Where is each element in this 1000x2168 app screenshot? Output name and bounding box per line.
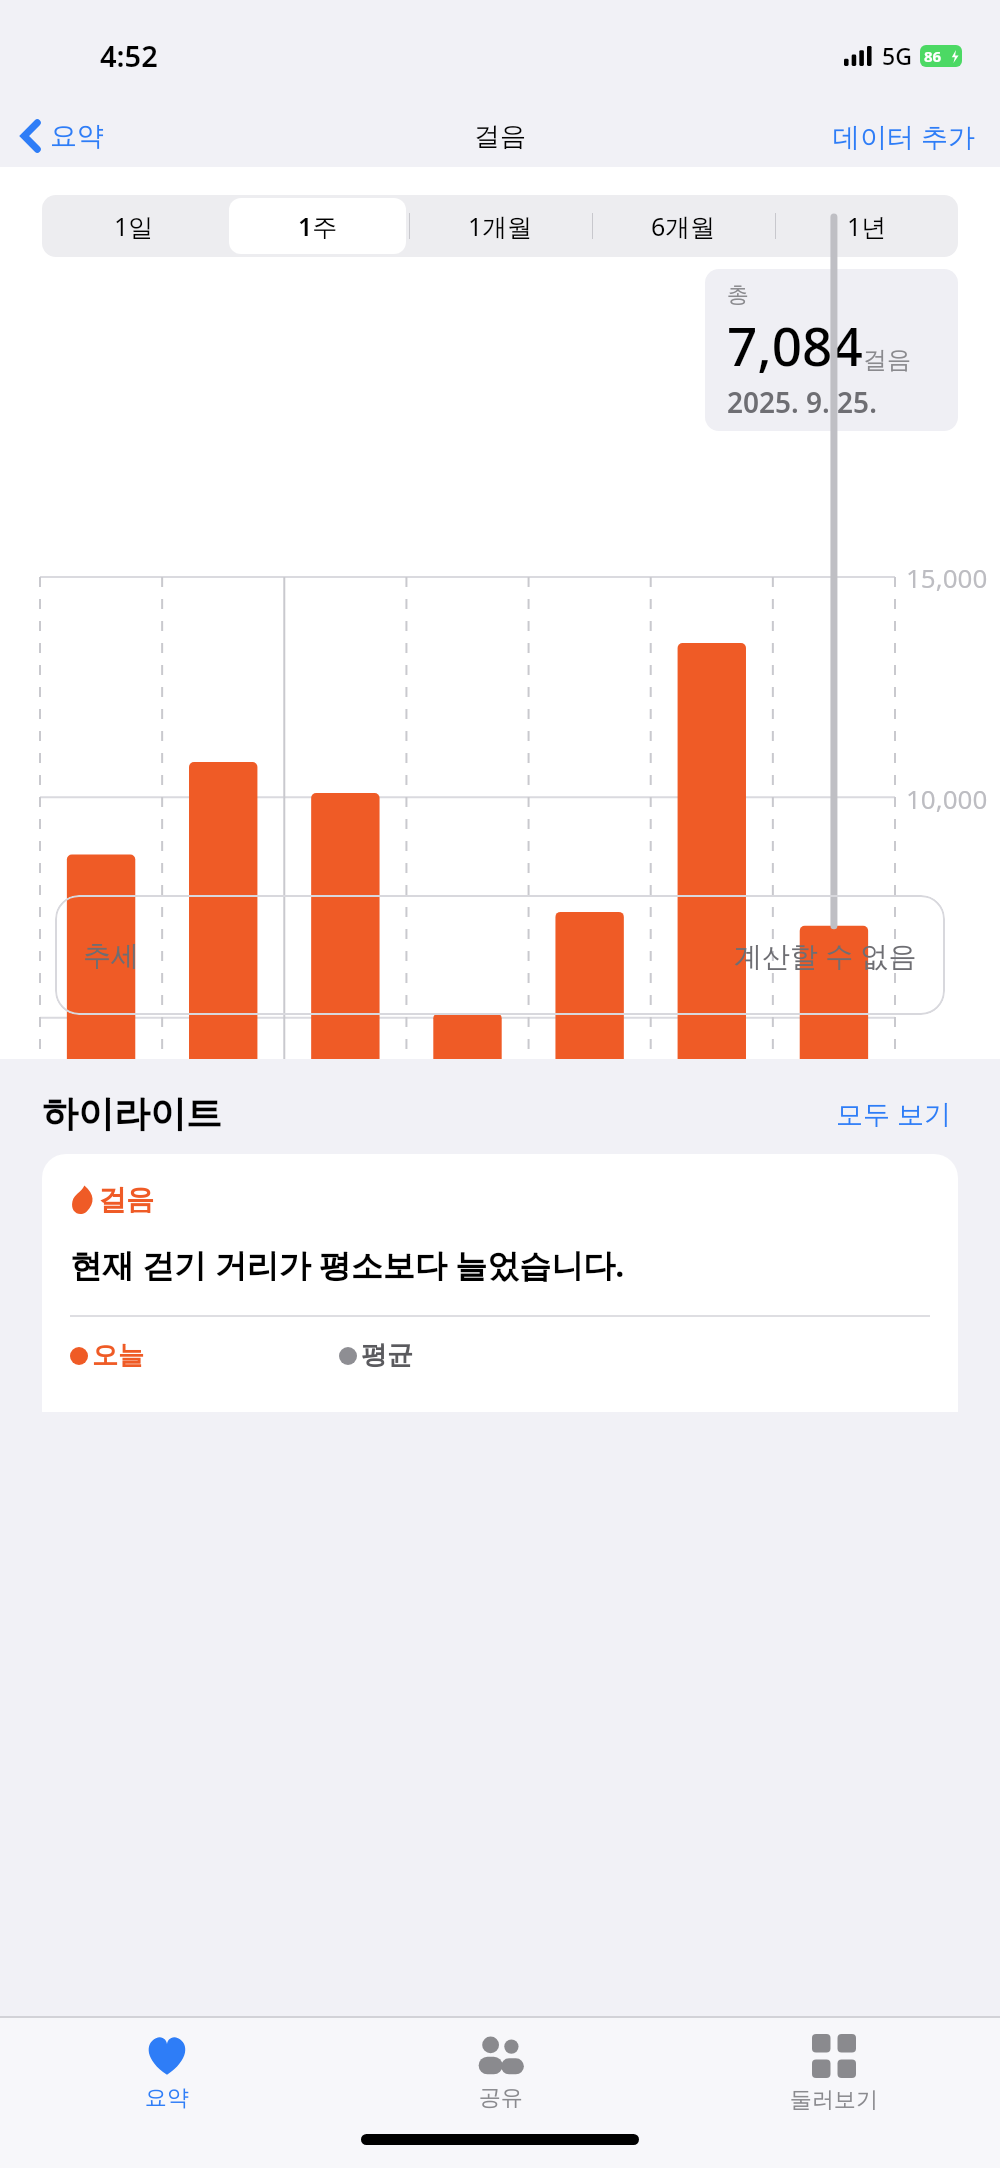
- staticText: 둘러보기: [790, 2086, 878, 2114]
- button[interactable]: 1일: [45, 198, 223, 254]
- staticText: 1개월: [468, 209, 533, 243]
- button[interactable]: 걸음: [42, 1154, 958, 1412]
- button[interactable]: 1년: [778, 198, 955, 254]
- staticText: 10,000: [906, 781, 988, 816]
- button[interactable]: 모두 보기: [830, 1089, 958, 1138]
- staticText: 걸음: [863, 345, 911, 375]
- button[interactable]: 1주: [229, 198, 406, 254]
- button[interactable]: 1개월: [412, 198, 589, 254]
- button[interactable]: Back: [0, 113, 118, 159]
- staticText: 계산할 수 없음: [734, 936, 917, 974]
- staticText: 요약: [145, 2084, 189, 2112]
- staticText: 4:52: [100, 36, 158, 75]
- staticText: 공유: [479, 2084, 523, 2112]
- staticText: 6개월: [651, 209, 716, 243]
- button[interactable]: 6개월: [595, 198, 772, 254]
- staticText: 1주: [298, 209, 338, 243]
- staticText: 5G: [882, 40, 912, 71]
- staticText: 요약: [50, 119, 104, 153]
- staticText: 86: [924, 46, 942, 66]
- button[interactable]: 데이터 추가: [809, 110, 1000, 163]
- other: Back: [22, 121, 40, 151]
- staticText: 현재 걷기 거리가 평소보다 늘었습니다.: [70, 1243, 625, 1287]
- button[interactable]: 둘러보기: [667, 2018, 1000, 2134]
- staticText: 하이라이트: [42, 1091, 222, 1136]
- staticText: 총: [727, 281, 749, 309]
- staticText: 오늘: [92, 1339, 144, 1372]
- button[interactable]: 공유: [334, 2018, 667, 2134]
- staticText: 15,000: [906, 560, 988, 595]
- staticText: 7,084: [727, 309, 863, 381]
- button[interactable]: 요약: [0, 2018, 334, 2134]
- button[interactable]: 추세: [55, 895, 945, 1015]
- staticText: 추세: [83, 938, 139, 973]
- staticText: 걸음: [474, 120, 526, 153]
- staticText: 평균: [361, 1339, 413, 1372]
- staticText: 2025. 9. 25.: [727, 383, 877, 421]
- staticText: 1일: [114, 209, 154, 243]
- staticText: 1년: [847, 209, 887, 243]
- staticText: 걸음: [98, 1182, 154, 1217]
